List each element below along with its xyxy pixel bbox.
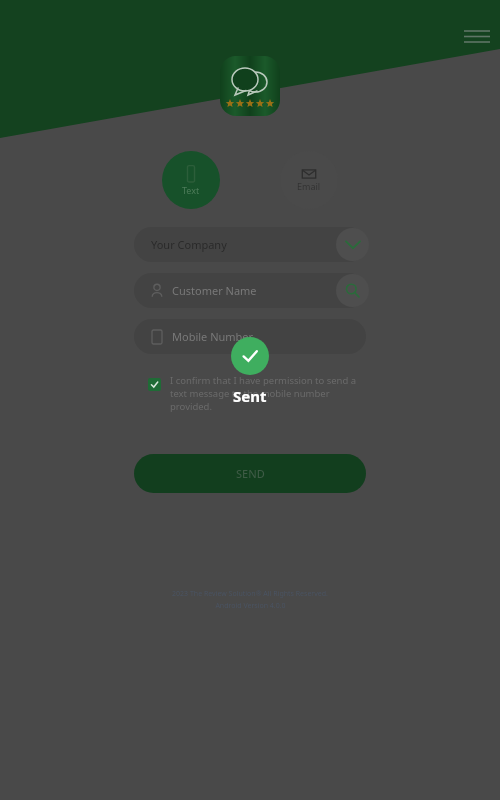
staticText: I confirm that I have permission to send… [170,374,358,413]
button[interactable]: Mobile Number [134,319,366,354]
button[interactable]: I confirm that I have permission to send… [148,374,358,413]
button[interactable]: Your Company [134,227,366,262]
button[interactable]: Email [280,151,338,209]
staticText: Mobile Number [172,329,254,344]
button[interactable]: Customer Name [134,273,366,308]
staticText: Text [182,184,200,196]
button[interactable]: Menu [459,22,495,52]
button[interactable]: SEND [134,454,366,493]
button[interactable]: The Review Solution logo [220,56,280,116]
staticText: Android Version 4.0.0 [215,601,286,611]
button[interactable]: Open company list [336,228,369,261]
staticText: Sent [233,386,267,406]
button[interactable]: Search customer [336,274,369,307]
staticText: Email [297,180,321,192]
staticText: Your Company [151,237,227,252]
button[interactable]: Text [162,151,220,209]
staticText: 2023 The Review Solution® All Rights Res… [172,589,328,599]
staticText: Customer Name [172,283,257,298]
staticText: SEND [236,466,265,481]
